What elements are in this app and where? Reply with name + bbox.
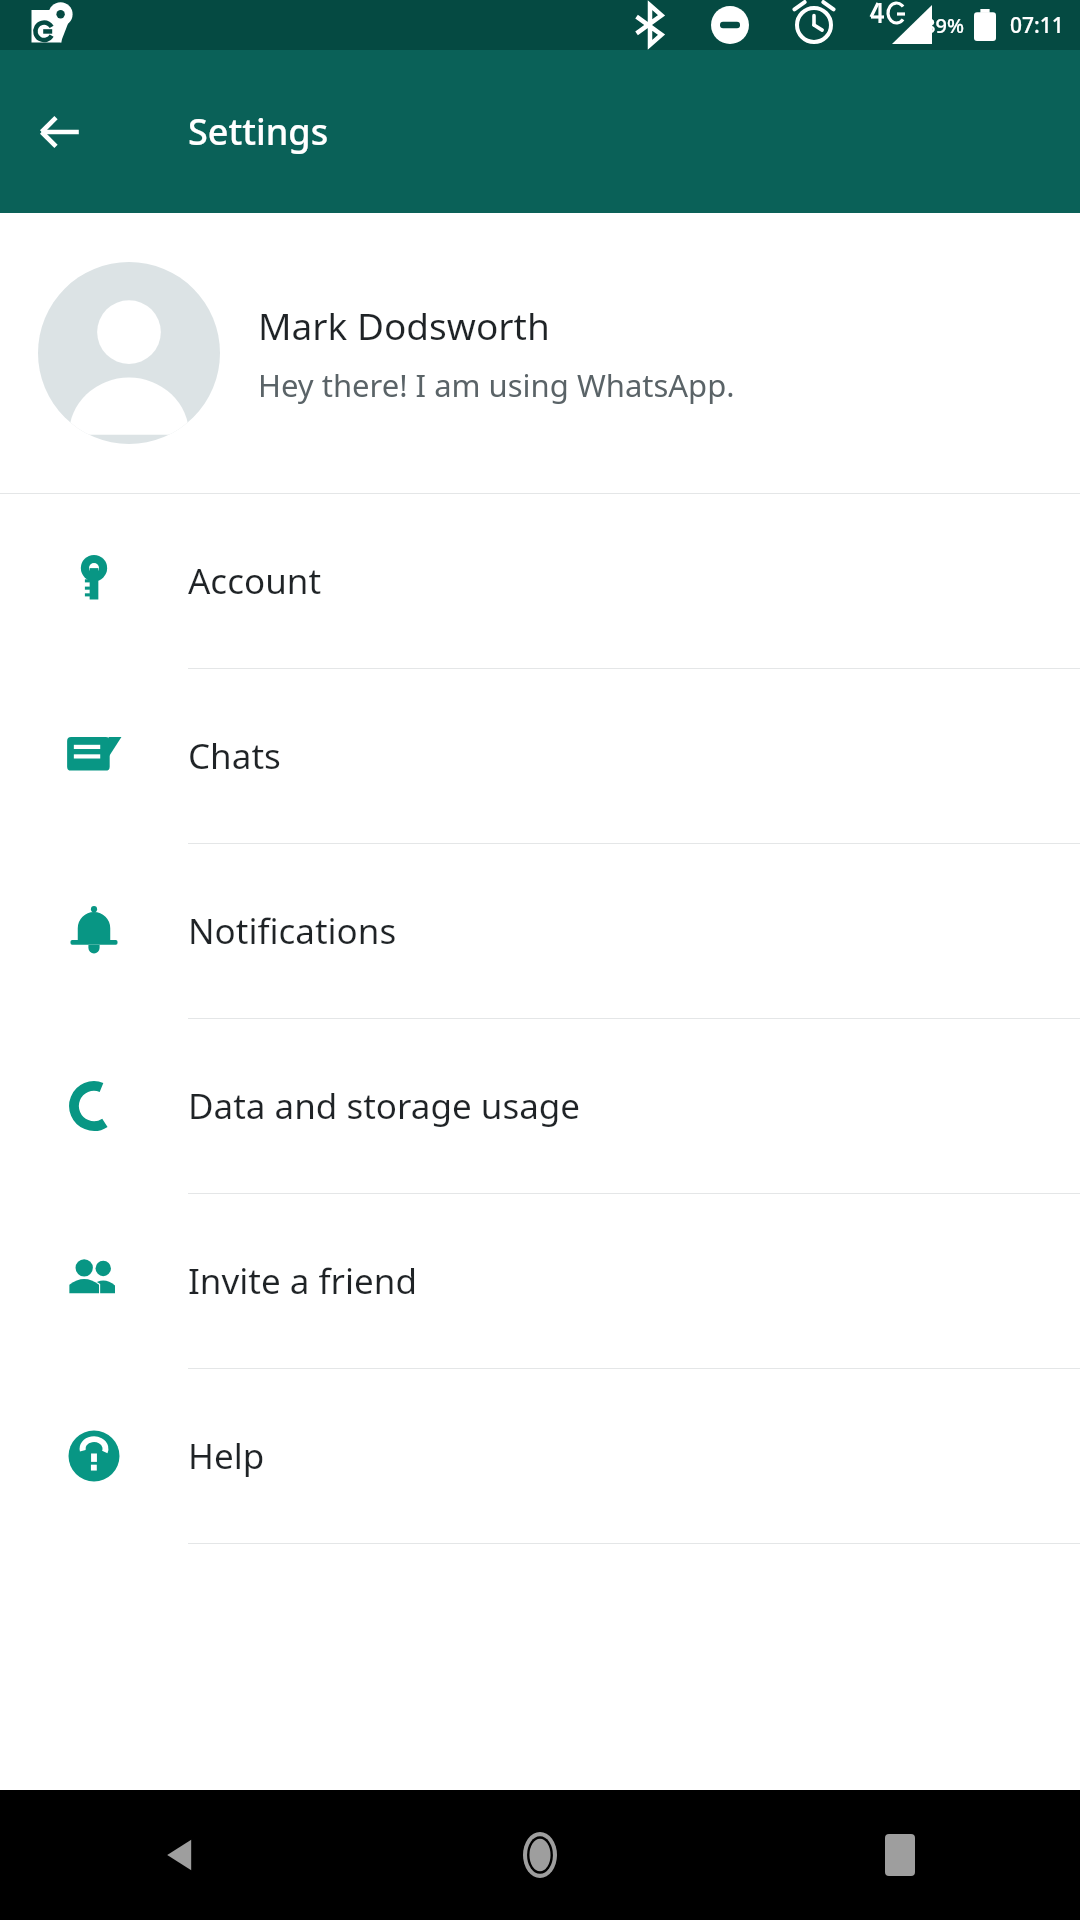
button[interactable]: Home	[360, 1790, 720, 1920]
button[interactable]: Account	[0, 494, 1080, 669]
staticText: Notifications	[188, 907, 397, 955]
button[interactable]: Invite a friend	[0, 1194, 1080, 1369]
staticText: 89%	[924, 12, 964, 39]
staticText: Settings	[188, 107, 329, 156]
staticText: Hey there! I am using WhatsApp.	[258, 364, 735, 406]
staticText: Data and storage usage	[188, 1082, 581, 1130]
staticText: Mark Dodsworth	[258, 300, 550, 350]
staticText: Invite a friend	[188, 1257, 417, 1305]
button[interactable]: Mark Dodsworth	[0, 213, 1080, 493]
button[interactable]: Recent apps	[720, 1790, 1080, 1920]
button[interactable]: Notifications	[0, 844, 1080, 1019]
button[interactable]: Chats	[0, 669, 1080, 844]
button[interactable]: Back	[0, 1790, 360, 1920]
staticText: Chats	[188, 732, 281, 780]
staticText: Help	[188, 1432, 265, 1480]
button[interactable]: Back	[22, 94, 98, 170]
staticText: 07:11	[1010, 11, 1064, 40]
button[interactable]: Help	[0, 1369, 1080, 1544]
button[interactable]: Data and storage usage	[0, 1019, 1080, 1194]
staticText: Account	[188, 557, 322, 605]
